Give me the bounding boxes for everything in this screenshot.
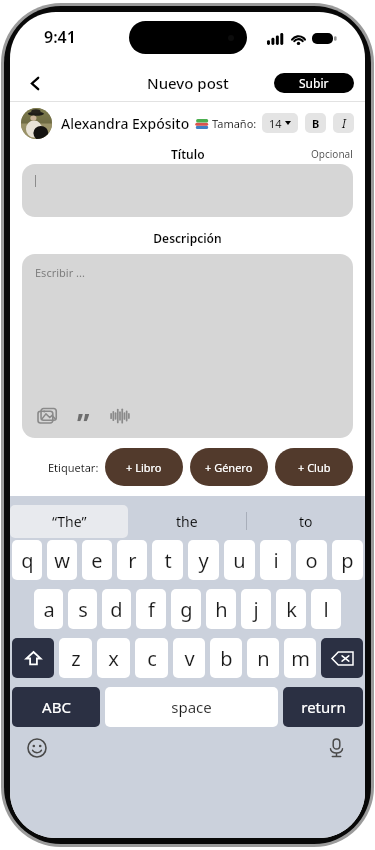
staticText: “The” [52, 512, 87, 531]
staticText: + Género [205, 460, 253, 475]
button[interactable]: g [171, 589, 201, 629]
button[interactable]: n [247, 638, 279, 678]
button[interactable]: 14 [262, 113, 298, 133]
button[interactable]: ABC [12, 687, 100, 727]
staticText: Subir [299, 75, 329, 91]
staticText: 14 [269, 116, 282, 131]
button[interactable]: u [224, 540, 255, 580]
staticText: d [110, 596, 123, 623]
staticText: Alexandra Expósito [61, 114, 190, 133]
staticText: + Libro [126, 460, 162, 475]
staticText: k [286, 596, 297, 623]
button[interactable]: z [59, 638, 92, 678]
staticText: w [54, 547, 70, 574]
button[interactable]: Back [18, 66, 52, 100]
staticText: c [147, 645, 157, 672]
button[interactable]: + Género [190, 448, 268, 486]
staticText: Descripción [10, 230, 365, 246]
staticText: i [273, 547, 279, 574]
button[interactable]: x [97, 638, 130, 678]
staticText: p [341, 547, 354, 574]
staticText: z [71, 645, 81, 672]
button[interactable]: Audio [108, 404, 132, 428]
button[interactable]: m [284, 638, 316, 678]
button[interactable]: Add image [36, 405, 58, 427]
staticText: v [184, 645, 195, 672]
button[interactable]: a [34, 589, 63, 629]
button[interactable]: t [152, 540, 183, 580]
button[interactable]: Escribir ... [22, 254, 353, 438]
staticText: B [312, 116, 320, 131]
staticText: Etiquetar: [48, 460, 99, 475]
staticText: m [291, 645, 310, 672]
button[interactable]: return [283, 687, 363, 727]
staticText: x [108, 645, 119, 672]
button[interactable]: Emoji [24, 735, 50, 761]
button[interactable]: b [210, 638, 242, 678]
button[interactable]: j [241, 589, 271, 629]
button[interactable]: space [105, 687, 278, 727]
staticText: n [257, 645, 270, 672]
button[interactable]: Dictate [323, 735, 349, 761]
button[interactable]: q [12, 540, 42, 580]
button[interactable]: i [260, 540, 291, 580]
staticText: l [323, 596, 329, 623]
button[interactable]: Quote [72, 405, 94, 427]
button[interactable]: d [102, 589, 131, 629]
staticText: the [176, 512, 198, 531]
staticText: ABC [42, 697, 71, 717]
button[interactable]: to [247, 505, 365, 538]
staticText: f [148, 596, 155, 623]
staticText: Opcional [311, 147, 353, 161]
staticText: space [171, 697, 212, 717]
button[interactable]: + Libro [105, 448, 183, 486]
staticText: u [233, 547, 246, 574]
staticText: h [215, 596, 228, 623]
button[interactable]: Backspace [321, 638, 363, 678]
button[interactable]: Subir [274, 73, 354, 93]
staticText: r [128, 547, 137, 574]
button[interactable]: c [135, 638, 168, 678]
button[interactable]: k [276, 589, 306, 629]
staticText: I [342, 115, 346, 131]
button[interactable]: the [128, 505, 246, 538]
button[interactable]: e [82, 540, 112, 580]
button[interactable]: w [47, 540, 77, 580]
staticText: y [198, 547, 209, 574]
staticText: Título [171, 146, 205, 162]
button[interactable]: p [332, 540, 363, 580]
staticText: o [305, 547, 318, 574]
staticText: to [299, 512, 313, 531]
button[interactable]: Shift [12, 638, 54, 678]
button[interactable]: f [136, 589, 166, 629]
staticText: j [253, 596, 259, 623]
button[interactable]: l [311, 589, 341, 629]
staticText: + Club [298, 460, 331, 475]
button[interactable] [22, 164, 353, 217]
staticText: Nuevo post [147, 73, 229, 93]
staticText: 9:41 [44, 26, 76, 48]
staticText: return [301, 697, 346, 717]
button[interactable]: r [117, 540, 147, 580]
button[interactable]: B [305, 113, 326, 133]
button[interactable]: I [333, 113, 354, 133]
staticText: b [220, 645, 233, 672]
button[interactable]: y [188, 540, 219, 580]
button[interactable]: s [68, 589, 97, 629]
staticText: a [43, 596, 55, 623]
staticText: g [180, 596, 193, 623]
staticText: e [91, 547, 103, 574]
staticText: s [78, 596, 88, 623]
button[interactable]: o [296, 540, 327, 580]
staticText: t [164, 547, 172, 574]
button[interactable]: + Club [275, 448, 353, 486]
staticText: Escribir ... [35, 265, 85, 280]
staticText: ” [77, 405, 90, 427]
staticText: Tamaño: [212, 116, 257, 131]
button[interactable]: h [206, 589, 236, 629]
button[interactable]: “The” [10, 505, 128, 538]
staticText: q [21, 547, 34, 574]
button[interactable]: v [173, 638, 205, 678]
